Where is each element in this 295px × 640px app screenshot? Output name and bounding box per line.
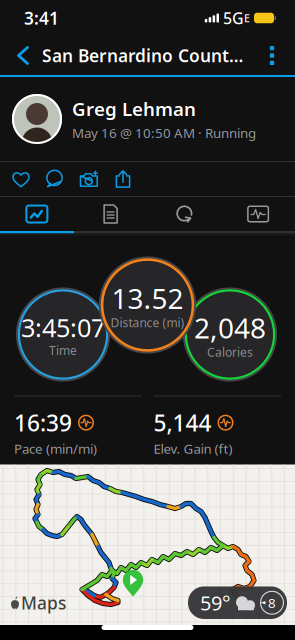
button[interactable]: Back bbox=[4, 36, 42, 74]
staticText: 59° bbox=[200, 589, 231, 616]
staticText: Pace (min/mi) bbox=[14, 440, 97, 457]
button[interactable]: Share bbox=[106, 162, 140, 196]
staticText: 3:45:07 bbox=[21, 311, 105, 344]
staticText: 5G bbox=[219, 7, 244, 29]
button[interactable]: Analysis bbox=[221, 197, 295, 231]
button[interactable]: Map bbox=[0, 197, 74, 231]
staticText: 8 bbox=[268, 594, 276, 612]
staticText: E bbox=[244, 11, 250, 25]
staticText: May 16 @ 10:50 AM · Running bbox=[72, 124, 256, 142]
staticText: 2,048 bbox=[194, 309, 266, 346]
button[interactable]: Comment bbox=[38, 162, 72, 196]
staticText: Time bbox=[49, 342, 77, 358]
button[interactable]: Like bbox=[4, 162, 38, 196]
button[interactable]: Add photo bbox=[72, 162, 106, 196]
button[interactable]: Laps bbox=[147, 197, 221, 231]
staticText: San Bernardino County Ru... bbox=[42, 44, 247, 67]
button[interactable]: More options bbox=[255, 36, 289, 74]
staticText: 3:41 bbox=[24, 6, 59, 29]
staticText: Distance (mi) bbox=[110, 315, 184, 330]
staticText: 16:39 bbox=[14, 408, 72, 438]
staticText: 5,144 bbox=[153, 408, 211, 438]
staticText: Greg Lehman bbox=[72, 96, 196, 121]
staticText: 13.52 bbox=[111, 279, 183, 317]
button[interactable]: Weather, 59 degrees bbox=[188, 586, 287, 619]
staticText: Maps bbox=[21, 591, 66, 614]
button[interactable]: Splits bbox=[74, 197, 148, 231]
staticText: Elev. Gain (ft) bbox=[153, 440, 232, 457]
staticText: Calories bbox=[207, 344, 253, 360]
